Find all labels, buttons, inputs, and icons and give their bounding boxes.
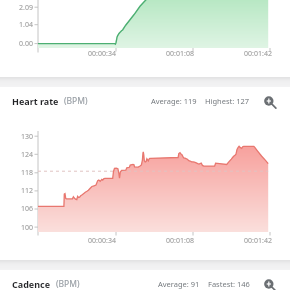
staticText: Heart rate (12, 95, 59, 107)
staticText: 2.09 (2, 3, 33, 13)
staticText: 00:00:34 (77, 236, 127, 246)
staticText: 00:01:42 (233, 49, 283, 59)
staticText: Average: 91 (158, 279, 200, 289)
staticText: 1.04 (2, 20, 33, 30)
staticText: 130 (2, 132, 33, 142)
staticText: (BPM) (56, 278, 80, 290)
staticText: 0.00 (2, 39, 33, 49)
staticText: Average: 119 (151, 96, 197, 106)
staticText: Fastest: 146 (208, 279, 250, 289)
staticText: 00:01:08 (155, 49, 205, 59)
staticText: 118 (2, 168, 33, 178)
staticText: Cadence (12, 278, 51, 290)
staticText: (BPM) (64, 95, 88, 107)
button[interactable]: Zoom in (264, 277, 278, 290)
staticText: 00:00:34 (77, 49, 127, 59)
staticText: 00:01:08 (155, 236, 205, 246)
staticText: 00:01:42 (233, 236, 283, 246)
staticText: 106 (2, 204, 33, 214)
button[interactable]: Zoom in (264, 94, 278, 108)
staticText: 100 (2, 223, 33, 233)
staticText: 112 (2, 186, 33, 196)
staticText: Highest: 127 (205, 96, 250, 106)
staticText: 124 (2, 150, 33, 160)
